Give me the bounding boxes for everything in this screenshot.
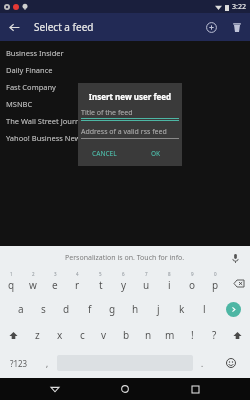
- staticText: 4: [76, 271, 79, 277]
- button[interactable]: ,: [38, 348, 57, 378]
- button[interactable]: Business Insider: [0, 44, 250, 61]
- button[interactable]: f: [78, 296, 101, 322]
- staticText: w: [29, 278, 37, 292]
- button[interactable]: ?: [203, 322, 225, 348]
- button[interactable]: Recents: [180, 378, 210, 400]
- staticText: u: [143, 278, 150, 292]
- staticText: Insert new user feed: [78, 91, 182, 102]
- staticText: k: [179, 302, 185, 316]
- staticText: Business Insider: [6, 48, 64, 58]
- button[interactable]: j: [147, 296, 170, 322]
- button[interactable]: Shift: [225, 322, 250, 348]
- staticText: h: [132, 302, 139, 316]
- button[interactable]: n: [137, 322, 159, 348]
- button[interactable]: MSNBC: [0, 95, 250, 112]
- staticText: CANCEL: [92, 149, 117, 158]
- staticText: Personalization is on. Touch for info.: [65, 253, 185, 263]
- staticText: j: [157, 302, 160, 316]
- staticText: 9: [191, 271, 194, 277]
- staticText: r: [75, 278, 80, 292]
- staticText: ,: [46, 358, 49, 369]
- staticText: g: [109, 302, 116, 316]
- button[interactable]: OK: [130, 147, 182, 160]
- staticText: 3:22: [232, 2, 246, 12]
- button[interactable]: Backspace: [227, 270, 250, 296]
- button[interactable]: The Wall Street Journal: [0, 112, 250, 129]
- button[interactable]: 0: [204, 270, 227, 296]
- staticText: The Wall Street Journal: [6, 116, 86, 126]
- staticText: 8: [168, 271, 171, 277]
- staticText: z: [35, 328, 40, 342]
- staticText: 7: [145, 271, 148, 277]
- staticText: x: [57, 328, 63, 342]
- button[interactable]: Shift: [0, 322, 26, 348]
- staticText: l: [203, 302, 206, 316]
- button[interactable]: Voice input: [228, 251, 242, 265]
- button[interactable]: CANCEL: [78, 147, 130, 160]
- button[interactable]: !: [181, 322, 203, 348]
- staticText: Title of the feed: [81, 108, 133, 118]
- staticText: q: [8, 278, 15, 292]
- button[interactable]: 6: [112, 270, 135, 296]
- button[interactable]: h: [124, 296, 147, 322]
- button[interactable]: Yahoo! Business News: [0, 129, 250, 146]
- staticText: OK: [151, 149, 161, 158]
- staticText: 6: [122, 271, 125, 277]
- button[interactable]: 9: [181, 270, 204, 296]
- staticText: c: [80, 328, 85, 342]
- staticText: s: [41, 302, 46, 316]
- button[interactable]: b: [115, 322, 137, 348]
- button[interactable]: m: [159, 322, 181, 348]
- staticText: Daily Finance: [6, 65, 53, 75]
- staticText: 3: [54, 271, 57, 277]
- button[interactable]: .: [193, 348, 212, 378]
- button[interactable]: Enter: [226, 302, 241, 317]
- button[interactable]: Fast Company: [0, 78, 250, 95]
- button[interactable]: Personalization is on. Touch for info.: [0, 246, 250, 270]
- button[interactable]: Daily Finance: [0, 61, 250, 78]
- button[interactable]: Back: [0, 13, 28, 41]
- button[interactable]: a: [10, 296, 32, 322]
- staticText: MSNBC: [6, 99, 33, 109]
- button[interactable]: Delete: [224, 14, 250, 40]
- staticText: Select a feed: [34, 20, 198, 34]
- button[interactable]: 4: [66, 270, 89, 296]
- staticText: !: [191, 328, 194, 342]
- staticText: Yahoo! Business News: [6, 133, 85, 143]
- button[interactable]: x: [49, 322, 71, 348]
- staticText: 1: [10, 271, 13, 277]
- staticText: v: [101, 328, 107, 342]
- button[interactable]: Home: [110, 378, 140, 400]
- button[interactable]: 3: [44, 270, 66, 296]
- button[interactable]: 1: [0, 270, 22, 296]
- button[interactable]: Add feed: [198, 14, 224, 40]
- button[interactable]: c: [71, 322, 93, 348]
- button[interactable]: 8: [158, 270, 181, 296]
- staticText: Fast Company: [6, 82, 56, 92]
- button[interactable]: v: [93, 322, 115, 348]
- staticText: ?123: [10, 358, 28, 369]
- staticText: 2: [32, 271, 35, 277]
- staticText: o: [189, 278, 196, 292]
- staticText: n: [145, 328, 152, 342]
- button[interactable]: 5: [89, 270, 112, 296]
- staticText: t: [99, 278, 103, 292]
- button[interactable]: s: [32, 296, 55, 322]
- button[interactable]: d: [55, 296, 78, 322]
- button[interactable]: Emoji: [212, 348, 250, 378]
- button[interactable]: 2: [22, 270, 44, 296]
- button[interactable]: l: [193, 296, 216, 322]
- button[interactable]: g: [101, 296, 124, 322]
- staticText: i: [168, 278, 171, 292]
- staticText: 0: [214, 271, 217, 277]
- button[interactable]: 7: [135, 270, 158, 296]
- staticText: ?: [212, 328, 217, 342]
- staticText: .: [201, 358, 204, 369]
- button[interactable]: z: [26, 322, 49, 348]
- button[interactable]: Back: [40, 378, 70, 400]
- button[interactable]: k: [170, 296, 193, 322]
- staticText: Address of a valid rss feed: [81, 127, 167, 137]
- button[interactable]: ?123: [0, 348, 38, 378]
- staticText: p: [212, 278, 219, 292]
